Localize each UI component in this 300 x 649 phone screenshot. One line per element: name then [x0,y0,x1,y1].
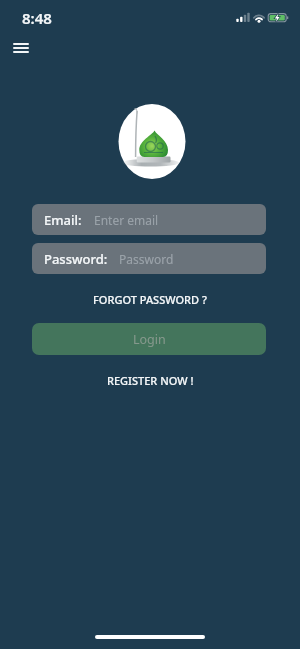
staticText: REGISTER NOW ! [107,373,194,388]
staticText: FORGOT PASSWORD ? [93,292,207,307]
button[interactable] [8,38,34,58]
staticText: Login [133,331,166,348]
button[interactable]: FORGOT PASSWORD ? [0,288,300,310]
staticText: Password [119,251,174,267]
button[interactable]: Password: [32,243,266,274]
staticText: 8:48 [22,8,52,28]
button[interactable]: Login [32,323,266,355]
staticText: Password: [44,250,108,268]
staticText: Enter email [94,212,159,228]
staticText: Email: [44,211,82,229]
button[interactable]: Email: [32,204,266,235]
button[interactable]: REGISTER NOW ! [0,369,300,391]
